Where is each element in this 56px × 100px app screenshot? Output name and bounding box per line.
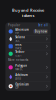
staticText: Ethereum xyxy=(15,28,29,31)
button[interactable]: See all xyxy=(38,23,48,27)
staticText: Buy and Receive xyxy=(12,8,44,13)
staticText: See all xyxy=(38,23,48,27)
button[interactable]: Base xyxy=(5,43,51,50)
staticText: SOL xyxy=(15,39,19,42)
staticText: More networks xyxy=(8,58,28,62)
button[interactable]: Solana xyxy=(5,35,51,42)
staticText: BASE xyxy=(15,46,21,50)
button[interactable]: Polygon xyxy=(5,63,51,72)
staticText: USDT xyxy=(15,54,21,57)
staticText: OP xyxy=(15,86,19,90)
staticText: Polygon xyxy=(15,64,27,67)
button[interactable]: Tether xyxy=(5,50,51,57)
staticText: Popular xyxy=(8,23,20,27)
staticText: Tether xyxy=(15,50,24,54)
button[interactable]: Optimism xyxy=(5,82,51,91)
staticText: Base xyxy=(15,43,22,46)
staticText: tokens xyxy=(21,13,34,18)
staticText: Solana xyxy=(15,35,25,39)
button[interactable]: Ethereum xyxy=(5,28,51,35)
staticText: ETH xyxy=(15,31,19,35)
button[interactable]: Arbitrum xyxy=(5,72,51,81)
staticText: ARB xyxy=(15,77,21,80)
staticText: MATIC xyxy=(15,67,23,71)
staticText: Arbitrum xyxy=(15,73,28,77)
staticText: Buy now xyxy=(35,30,47,33)
staticText: Optimism xyxy=(15,83,29,86)
